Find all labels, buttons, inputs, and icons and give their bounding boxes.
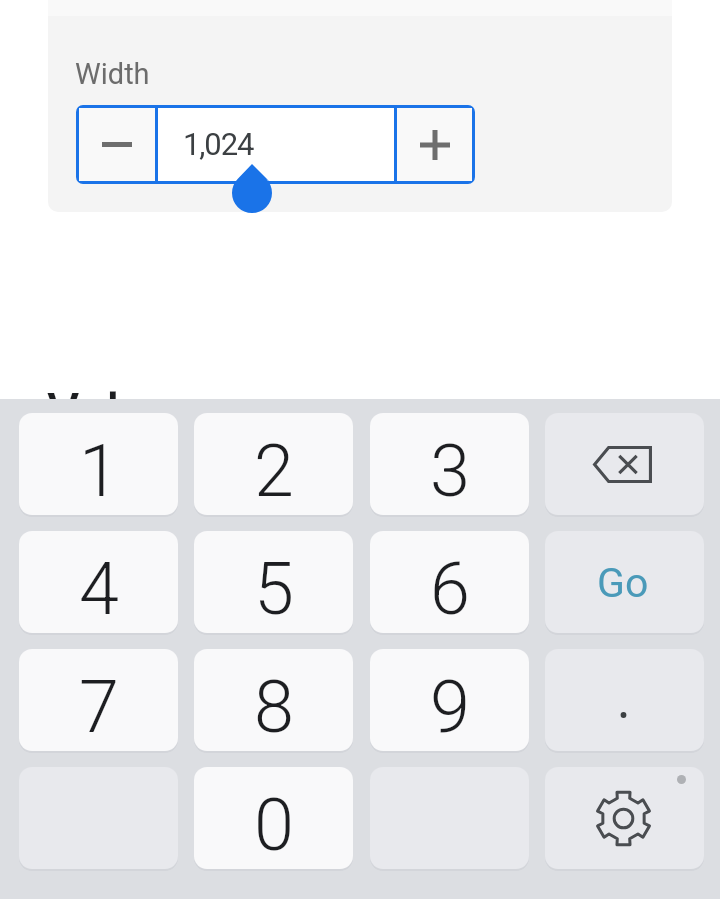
staticText: 0 bbox=[254, 783, 294, 867]
button[interactable]: Keyboard settings bbox=[545, 767, 704, 869]
staticText: 6 bbox=[430, 547, 470, 631]
button[interactable]: 6 bbox=[370, 531, 529, 633]
button[interactable]: 5 bbox=[194, 531, 353, 633]
button[interactable]: 1,024 bbox=[158, 108, 394, 181]
button[interactable]: Go bbox=[545, 531, 704, 633]
staticText: 9 bbox=[430, 665, 470, 749]
button[interactable]: 4 bbox=[19, 531, 178, 633]
button[interactable]: 7 bbox=[19, 649, 178, 751]
staticText: 1,024 bbox=[183, 126, 254, 162]
button[interactable]: 9 bbox=[370, 649, 529, 751]
staticText: Width bbox=[75, 57, 150, 91]
staticText: 2 bbox=[254, 429, 294, 513]
button[interactable]: 8 bbox=[194, 649, 353, 751]
button[interactable]: Delete bbox=[545, 413, 704, 515]
staticText: Volume bbox=[47, 383, 218, 442]
button[interactable]: 2 bbox=[194, 413, 353, 515]
button[interactable]: Decrease width bbox=[79, 108, 155, 181]
staticText: 8 bbox=[254, 665, 294, 749]
button[interactable]: Decimal point bbox=[545, 649, 704, 751]
staticText: 5 bbox=[254, 547, 294, 631]
staticText: Go bbox=[597, 559, 649, 607]
button[interactable]: 1 bbox=[19, 413, 178, 515]
button[interactable]: 3 bbox=[370, 413, 529, 515]
staticText: 7 bbox=[79, 665, 119, 749]
button[interactable]: 0 bbox=[194, 767, 353, 869]
staticText: 3 bbox=[430, 429, 470, 513]
button[interactable]: Increase width bbox=[397, 108, 472, 181]
staticText: 4 bbox=[79, 547, 119, 631]
staticText: 1 bbox=[79, 429, 119, 513]
other: Text cursor handle bbox=[232, 164, 272, 213]
